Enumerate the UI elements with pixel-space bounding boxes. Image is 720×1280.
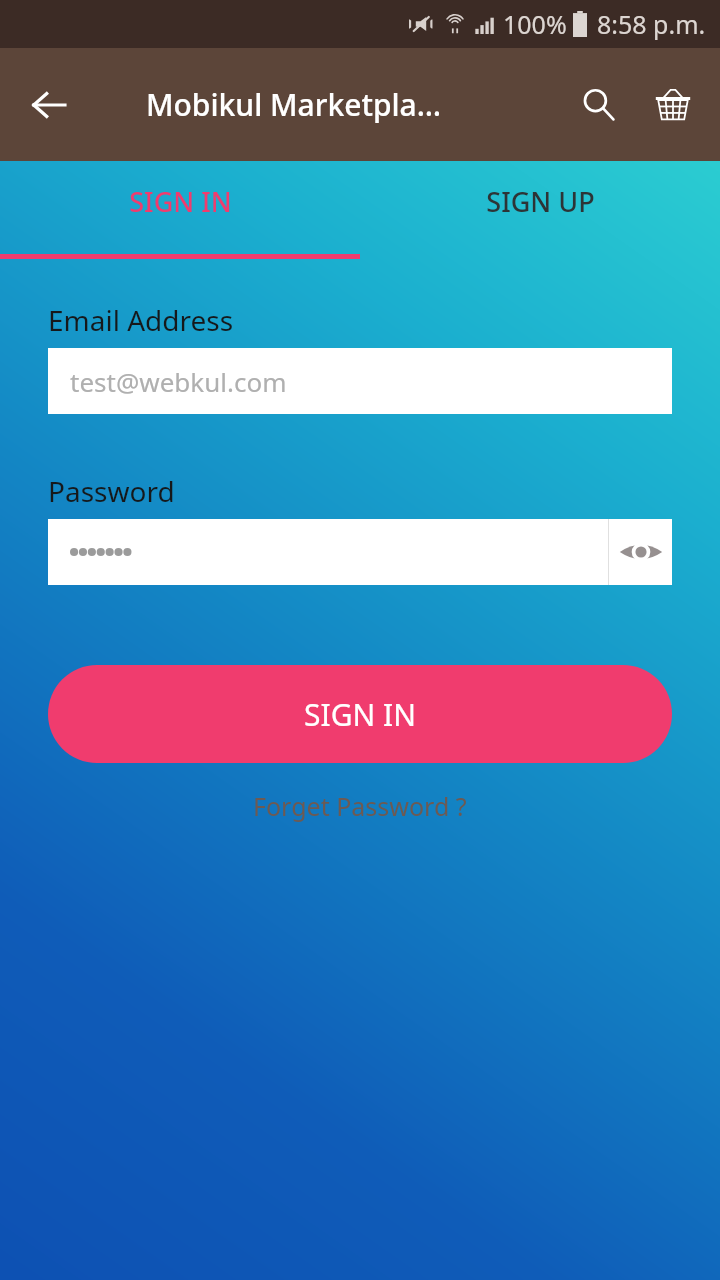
button[interactable]: SIGN IN — [0, 161, 360, 259]
button[interactable]: test@webkul.com — [48, 348, 672, 414]
staticText: Email Address — [48, 301, 234, 339]
staticText: Mobikul Marketpla… — [146, 84, 442, 125]
staticText: 8:58 p.m. — [597, 7, 706, 41]
staticText: SIGN IN — [129, 183, 232, 220]
staticText: Password — [48, 472, 175, 510]
staticText: SIGN IN — [304, 694, 417, 735]
staticText: SIGN UP — [486, 183, 595, 220]
button[interactable]: Back — [14, 70, 84, 140]
button[interactable]: Cart — [636, 68, 710, 142]
staticText: test@webkul.com — [70, 364, 287, 399]
staticText: Forget Password ? — [253, 789, 467, 823]
button[interactable]: SIGN UP — [360, 161, 720, 259]
button[interactable]: SIGN IN — [48, 665, 672, 763]
button[interactable]: Show password — [609, 519, 672, 585]
staticText: 100% — [503, 7, 567, 41]
button[interactable]: Forget Password ? — [233, 783, 487, 829]
button[interactable] — [48, 519, 608, 585]
button[interactable]: Search — [562, 68, 636, 142]
